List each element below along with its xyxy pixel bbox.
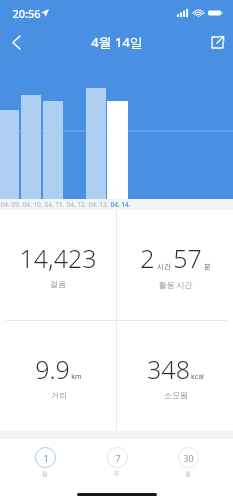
button[interactable]: Share <box>201 26 233 58</box>
staticText: kcal <box>191 372 204 382</box>
button[interactable]: Back <box>0 26 32 58</box>
button[interactable]: 2 <box>117 210 233 320</box>
staticText: 소모됨 <box>164 390 188 400</box>
staticText: 일 <box>42 470 48 478</box>
staticText: 30 <box>183 452 194 464</box>
staticText: km <box>71 372 82 382</box>
button[interactable]: 7 <box>90 445 144 480</box>
staticText: 7 <box>115 452 121 464</box>
staticText: 월 <box>185 470 191 478</box>
staticText: 주 <box>114 470 120 478</box>
staticText: 거리 <box>51 390 67 400</box>
staticText: 2 <box>140 241 155 275</box>
staticText: 04. 09. <box>0 200 21 209</box>
staticText: 1 <box>43 452 49 464</box>
staticText: 04. 11. <box>44 200 65 209</box>
staticText: 348 <box>147 352 190 386</box>
staticText: 57 <box>173 241 202 275</box>
button[interactable]: 348 <box>117 321 233 431</box>
staticText: 9.9 <box>35 352 70 386</box>
staticText: 04. 12. <box>66 200 87 209</box>
button[interactable]: 30 <box>161 445 215 480</box>
staticText: 14,423 <box>19 241 97 275</box>
staticText: 분 <box>204 262 211 271</box>
staticText: 04. 14. <box>110 200 131 209</box>
staticText: 시간 <box>157 262 171 271</box>
staticText: 04. 10. <box>22 200 43 209</box>
staticText: 걸음 <box>50 279 66 289</box>
staticText: 4월 14일 <box>91 33 143 51</box>
staticText: 20:56 <box>12 6 41 21</box>
button[interactable]: 1 <box>18 445 72 480</box>
button[interactable]: 9.9 <box>0 321 116 431</box>
staticText: 활동 시간 <box>158 279 193 290</box>
staticText: 04. 13. <box>88 200 109 209</box>
button[interactable]: 14,423 <box>0 210 116 320</box>
